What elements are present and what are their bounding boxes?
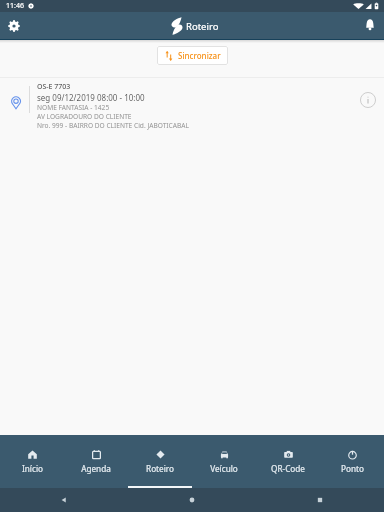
staticText: Roteiro xyxy=(146,463,174,474)
staticText: Agenda xyxy=(81,463,111,474)
staticText: Ponto xyxy=(341,463,364,474)
button[interactable]: Settings xyxy=(0,12,28,39)
button[interactable]: Veículo xyxy=(192,435,256,488)
button[interactable]: Recents xyxy=(256,488,384,512)
staticText: Roteiro xyxy=(186,20,219,33)
staticText: NOME FANTASIA - 1425 xyxy=(37,103,110,112)
staticText: Nro. 999 - BAIRRO DO CLIENTE Cid. JABOTI… xyxy=(37,121,189,130)
staticText: seg 09/12/2019 08:00 - 10:00 xyxy=(37,92,145,103)
button[interactable]: Agenda xyxy=(64,435,128,488)
button[interactable]: Roteiro xyxy=(128,435,192,488)
button[interactable]: OS-E 7703 xyxy=(0,78,384,130)
button[interactable]: Início xyxy=(0,435,64,488)
staticText: Veículo xyxy=(210,463,238,474)
staticText: OS-E 7703 xyxy=(37,82,71,92)
staticText: Início xyxy=(22,463,43,474)
button[interactable]: QR-Code xyxy=(256,435,320,488)
button[interactable]: Home xyxy=(128,488,256,512)
button[interactable]: Back xyxy=(0,488,128,512)
button[interactable]: Ponto xyxy=(320,435,384,488)
staticText: AV LOGRADOURO DO CLIENTE xyxy=(37,112,132,121)
staticText: 11:46 xyxy=(6,1,24,11)
staticText: Sincronizar xyxy=(178,50,221,61)
button[interactable]: Notifications xyxy=(356,12,384,39)
staticText: QR-Code xyxy=(271,463,305,474)
button[interactable]: Sincronizar xyxy=(157,46,228,65)
button[interactable]: Info xyxy=(351,78,384,118)
